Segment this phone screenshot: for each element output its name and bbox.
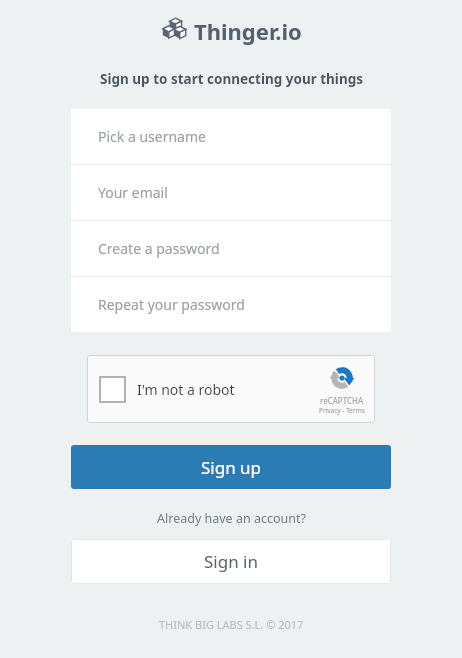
button[interactable]: Your email: [71, 165, 391, 220]
button[interactable]: I'm not a robot checkbox: [87, 355, 375, 423]
staticText: Pick a username: [98, 127, 206, 146]
staticText: reCAPTCHA: [320, 395, 364, 406]
staticText: I'm not a robot: [137, 380, 235, 399]
staticText: Sign up: [201, 456, 262, 479]
other: I'm not a robot checkbox: [99, 376, 126, 403]
button[interactable]: Sign in: [71, 539, 391, 584]
other: Thinger.io logo: [161, 19, 187, 43]
staticText: Sign in: [204, 550, 258, 573]
staticText: Already have an account?: [157, 510, 306, 527]
button[interactable]: Thinger.io logo: [157, 14, 306, 48]
button[interactable]: Sign up: [71, 445, 391, 489]
button[interactable]: Create a password: [71, 221, 391, 276]
button[interactable]: Repeat your password: [71, 277, 391, 332]
staticText: THINK BIG LABS S.L. © 2017: [159, 617, 304, 632]
staticText: Repeat your password: [98, 295, 245, 314]
staticText: Privacy - Terms: [319, 406, 365, 415]
staticText: Your email: [98, 183, 168, 202]
button[interactable]: Pick a username: [71, 109, 391, 164]
staticText: Thinger.io: [194, 16, 302, 46]
staticText: Sign up to start connecting your things: [100, 70, 363, 88]
staticText: Create a password: [98, 239, 220, 258]
